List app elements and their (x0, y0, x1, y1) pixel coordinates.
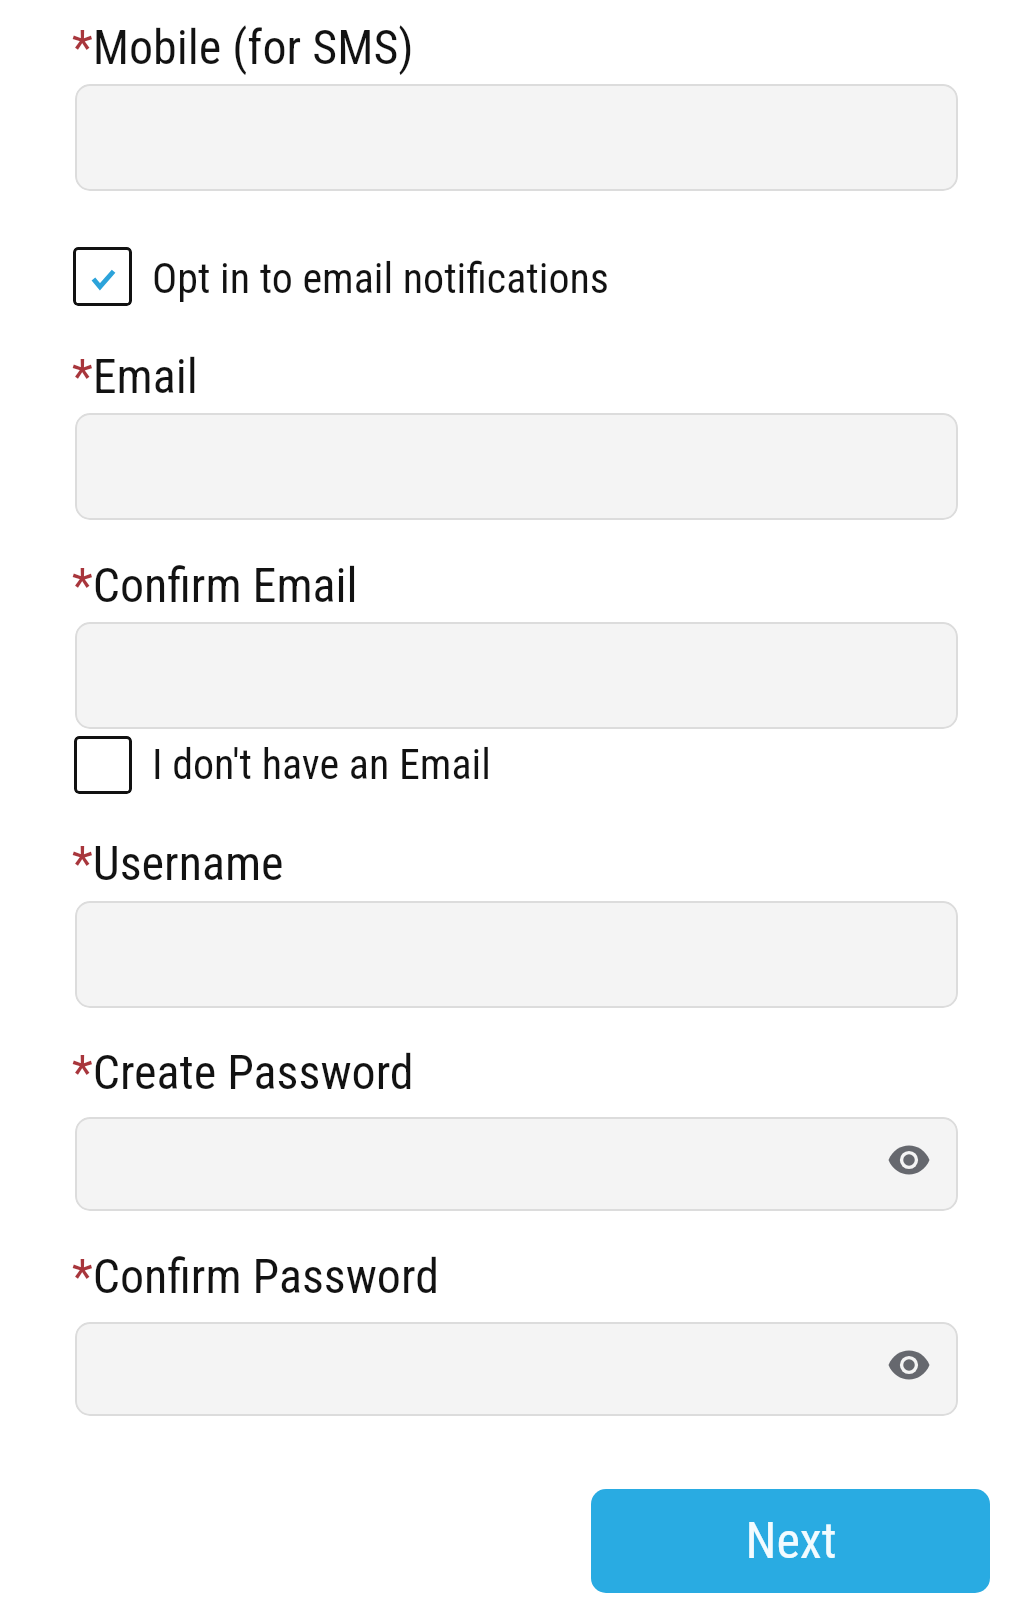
button[interactable]: Mobile number (75, 84, 958, 191)
button[interactable]: Confirm password (75, 1322, 958, 1416)
staticText: *Confirm Email (72, 557, 358, 613)
button[interactable]: Opt in to email notifications (70, 243, 612, 310)
staticText: *Mobile (for SMS) (72, 19, 414, 75)
button[interactable]: Email (75, 413, 958, 520)
button[interactable]: Create password (75, 1117, 958, 1211)
staticText: *Create Password (72, 1044, 414, 1100)
staticText: I don't have an Email (152, 740, 491, 789)
button[interactable]: Confirm email (75, 622, 958, 729)
button[interactable]: Show password (873, 1124, 945, 1196)
button[interactable]: I don't have an Email (71, 732, 494, 798)
staticText: Opt in to email notifications (152, 254, 609, 303)
button[interactable]: Username (75, 901, 958, 1008)
staticText: *Confirm Password (72, 1248, 439, 1304)
button[interactable]: Next (591, 1489, 990, 1593)
staticText: Next (745, 1512, 837, 1571)
staticText: *Username (72, 835, 284, 891)
staticText: *Email (72, 348, 198, 404)
button[interactable]: Show password (873, 1329, 945, 1401)
